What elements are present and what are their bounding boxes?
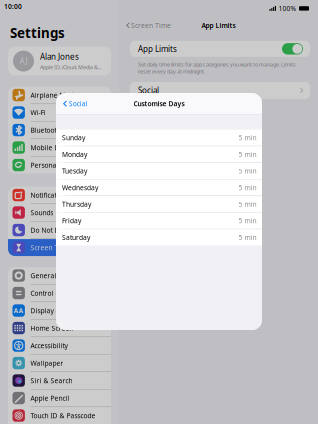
staticText: Sunday [62, 133, 85, 142]
button[interactable]: Apple Pencil [8, 390, 111, 407]
staticText: Monday [62, 150, 87, 159]
staticText: Do Not Disturb [30, 226, 77, 234]
button[interactable]: Wi-Fi [8, 104, 111, 121]
staticText: 5 min [239, 166, 257, 175]
staticText: Wi-Fi [30, 108, 45, 117]
staticText: Alan Jones [40, 51, 79, 62]
button[interactable]: Saturday [56, 229, 262, 245]
staticText: Sounds [30, 208, 53, 217]
staticText: 100% [278, 4, 296, 13]
button[interactable]: Personal Hotspot [8, 157, 111, 174]
button[interactable]: Home Screen [8, 320, 111, 337]
button[interactable]: Friday [56, 213, 262, 229]
staticText: 10:00 [4, 2, 22, 11]
button[interactable]: Notifications [8, 187, 111, 204]
button[interactable]: Thursday [56, 196, 262, 212]
button[interactable]: Wallpaper [8, 355, 111, 372]
button[interactable]: Accessibility [8, 337, 111, 354]
button[interactable]: Social [62, 96, 88, 111]
button[interactable]: Wednesday [56, 179, 262, 196]
staticText: Personal Hotspot [30, 161, 84, 169]
staticText: Control Centre [30, 289, 76, 297]
staticText: 5 min [239, 216, 257, 225]
button[interactable]: Airplane Mode [8, 87, 111, 104]
button[interactable]: AJ [8, 47, 111, 76]
staticText: Mobile Data [30, 143, 69, 152]
button[interactable]: Monday [56, 146, 262, 162]
staticText: Wallpaper [30, 359, 63, 367]
staticText: Friday [62, 216, 81, 225]
staticText: Tuesday [62, 166, 87, 175]
staticText: Thursday [62, 200, 91, 209]
staticText: Airplane Mode [30, 91, 77, 99]
staticText: Apple ID, iCloud, Media &... [40, 64, 101, 71]
staticText: Touch ID & Passcode [30, 411, 95, 420]
staticText: Saturday [62, 233, 90, 242]
button[interactable]: App Limits toggle [282, 43, 303, 55]
button[interactable]: Sounds [8, 204, 111, 221]
button[interactable]: Siri & Search [8, 372, 111, 389]
staticText: Siri & Search [30, 376, 72, 385]
staticText: Social [138, 85, 159, 96]
staticText: Customise Days [133, 99, 184, 108]
staticText: Settings [10, 24, 65, 42]
staticText: Screen Time [131, 21, 171, 30]
staticText: 5 min [239, 183, 257, 192]
button[interactable]: Do Not Disturb [8, 222, 111, 239]
button[interactable]: Sunday [56, 130, 262, 146]
staticText: Bluetooth [30, 126, 60, 134]
staticText: Apple Pencil [30, 394, 69, 402]
button[interactable]: Tuesday [56, 163, 262, 179]
staticText: 5 min [239, 150, 257, 159]
staticText: General [30, 271, 56, 280]
button[interactable]: Touch ID & Passcode [8, 407, 111, 424]
staticText: Display & Brightness [30, 306, 95, 315]
button[interactable]: AA [8, 302, 111, 319]
button[interactable]: Control Centre [8, 285, 111, 302]
staticText: AA [14, 306, 24, 315]
staticText: 5 min [239, 200, 257, 209]
button[interactable]: Screen Time [8, 239, 111, 256]
staticText: Notifications [30, 191, 69, 199]
staticText: Social [69, 99, 88, 108]
staticText: 5 min [239, 233, 257, 242]
button[interactable]: General [8, 267, 111, 284]
staticText: Home Screen [30, 324, 73, 332]
staticText: Set daily time limits for app categories… [138, 61, 296, 75]
staticText: App Limits [138, 43, 177, 54]
button[interactable]: Social [130, 82, 310, 99]
staticText: Screen Time [30, 243, 70, 252]
button[interactable]: Bluetooth [8, 122, 111, 139]
staticText: 5 min [239, 133, 257, 142]
button[interactable]: Mobile Data [8, 139, 111, 156]
staticText: AJ [19, 56, 27, 66]
button[interactable]: Screen Time [125, 18, 171, 33]
staticText: Accessibility [30, 341, 67, 350]
staticText: Wednesday [62, 183, 98, 192]
staticText: App Limits [201, 21, 235, 30]
